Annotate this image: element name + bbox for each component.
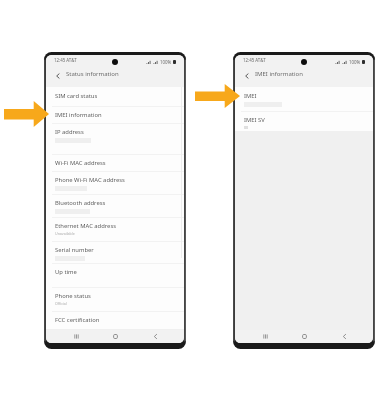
staticText: Serial number xyxy=(55,246,94,254)
staticText: Official xyxy=(55,301,67,306)
staticText: IMEI xyxy=(244,92,257,100)
button[interactable]: Navigate up xyxy=(53,69,62,83)
staticText: IMEI information xyxy=(55,111,102,119)
staticText: 100% xyxy=(349,59,361,65)
staticText: Up time xyxy=(55,268,77,276)
button[interactable]: SIM card status xyxy=(46,87,184,106)
staticText: Phone status xyxy=(55,292,91,300)
button[interactable]: Back xyxy=(147,330,163,343)
button[interactable]: Home xyxy=(107,330,123,343)
button[interactable]: Back xyxy=(336,330,352,343)
button[interactable]: Home xyxy=(296,330,312,343)
button[interactable]: IMEI xyxy=(235,87,373,111)
button[interactable]: Bluetooth address xyxy=(46,194,184,217)
staticText: Status information xyxy=(66,70,119,78)
button[interactable]: Phone status xyxy=(46,287,184,311)
staticText: 12:45 AT&T xyxy=(54,57,77,63)
staticText: IMEI SV xyxy=(244,116,265,124)
staticText: FCC certification xyxy=(55,316,100,324)
staticText: IP address xyxy=(55,128,84,136)
button[interactable]: Wi-Fi MAC address xyxy=(46,154,184,171)
staticText: Wi-Fi MAC address xyxy=(55,159,106,167)
staticText: Bluetooth address xyxy=(55,199,106,207)
staticText: 12:45 AT&T xyxy=(243,57,266,63)
other: Arrow pointing right xyxy=(4,101,49,127)
staticText: Phone Wi-Fi MAC address xyxy=(55,176,125,184)
button[interactable]: IMEI information xyxy=(46,106,184,123)
button[interactable]: IMEI SV xyxy=(235,111,373,131)
staticText: SIM card status xyxy=(55,92,98,100)
staticText: Ethernet MAC address xyxy=(55,222,117,230)
button[interactable]: Up time xyxy=(46,263,184,287)
button[interactable]: Recents xyxy=(257,330,273,343)
button[interactable]: Ethernet MAC address xyxy=(46,217,184,241)
staticText: 100% xyxy=(160,59,172,65)
button[interactable]: IP address xyxy=(46,123,184,154)
button[interactable]: Serial number xyxy=(46,241,184,263)
button[interactable]: Navigate up xyxy=(242,69,251,83)
staticText: 00 xyxy=(244,125,249,130)
button[interactable]: FCC certification xyxy=(46,311,184,329)
staticText: Unavailable xyxy=(55,231,75,236)
other: Arrow pointing right xyxy=(195,84,240,108)
staticText: IMEI information xyxy=(255,70,303,78)
button[interactable]: Phone Wi-Fi MAC address xyxy=(46,171,184,194)
button[interactable]: Recents xyxy=(68,330,84,343)
